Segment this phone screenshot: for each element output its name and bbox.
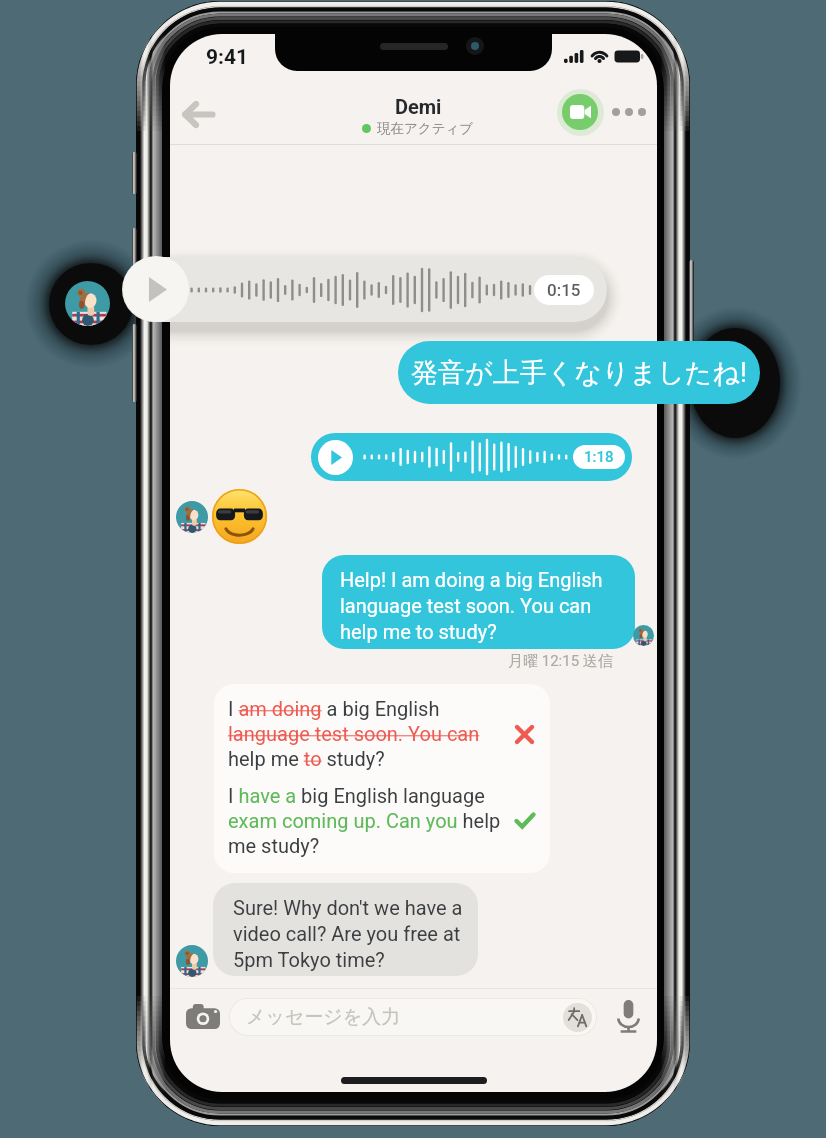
button[interactable]: Back [173,89,223,139]
staticText: 0:15 [547,280,581,300]
button[interactable]: 1:18 [311,433,632,481]
staticText: Help! I am doing a big English language … [340,568,603,643]
button[interactable]: I am doing a big English language test s… [214,684,550,873]
staticText: 1:18 [584,448,614,466]
button[interactable]: Help! I am doing a big English language … [322,555,635,649]
button[interactable]: Voice message [602,990,654,1042]
staticText: 月曜 12:15 送信 [508,652,613,671]
button[interactable]: Sure! Why don't we have a video call? Ar… [213,883,478,976]
button[interactable]: Translate [563,1003,592,1032]
button[interactable]: 発音が上手くなりましたね! [398,341,760,404]
staticText: Sure! Why don't we have a video call? Ar… [233,896,463,971]
staticText: I am doing a big English language test s… [228,697,503,771]
staticText: 9:41 [206,45,249,70]
button[interactable]: 0:15 [122,257,607,322]
staticText: 発音が上手くなりましたね! [411,356,748,390]
button[interactable]: Play voice message [123,256,189,322]
button[interactable]: Video call [555,87,605,137]
staticText: メッセージを入力 [246,1005,401,1029]
button[interactable]: Camera [177,990,229,1042]
staticText: Demi [395,95,442,118]
button[interactable]: More options [604,87,654,137]
button[interactable]: メッセージを入力 [229,998,597,1036]
staticText: I have a big English language exam comin… [228,784,503,858]
staticText: 現在アクティブ [377,120,474,137]
